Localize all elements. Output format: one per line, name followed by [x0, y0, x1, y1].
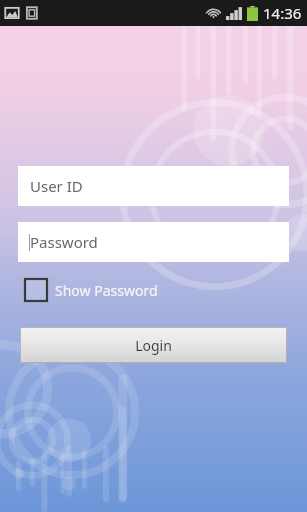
button[interactable]: Login	[20, 327, 287, 363]
button[interactable]: User ID	[18, 166, 289, 206]
staticText: Login	[135, 336, 172, 355]
staticText: Password	[30, 232, 98, 252]
staticText: Show Password	[55, 281, 158, 300]
button[interactable]: Show Password	[25, 279, 158, 301]
button[interactable]: Password	[18, 222, 289, 262]
staticText: 14:36	[263, 3, 302, 23]
staticText: User ID	[30, 176, 83, 196]
